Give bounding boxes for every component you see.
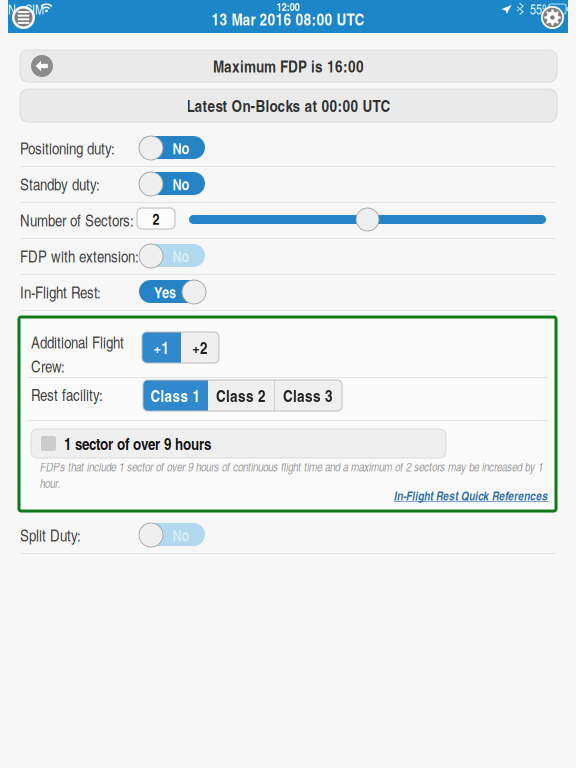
- staticText: Crew:: [31, 355, 65, 377]
- staticText: No: [172, 245, 189, 267]
- staticText: Class 1: [150, 384, 200, 407]
- staticText: Yes: [154, 281, 176, 303]
- staticText: 2: [152, 208, 159, 229]
- staticText: Split Duty:: [20, 524, 81, 546]
- staticText: Rest facility:: [31, 383, 103, 405]
- button[interactable]: Maximum FDP is 16:00: [20, 50, 557, 82]
- staticText: 55%: [530, 0, 552, 18]
- button[interactable]: In-Flight Rest Quick References: [387, 487, 548, 504]
- staticText: Latest On-Blocks at 00:00 UTC: [186, 94, 390, 117]
- staticText: In-Flight Rest:: [20, 281, 101, 303]
- staticText: FDPs that include 1 sector of over 9 hou…: [40, 458, 543, 491]
- button[interactable]: Class 2: [208, 380, 274, 411]
- staticText: 13 Mar 2016 08:00 UTC: [211, 7, 364, 31]
- staticText: Standby duty:: [20, 173, 100, 195]
- staticText: Additional Flight: [31, 331, 124, 353]
- button[interactable]: 1 sector of over 9 hours: [31, 429, 446, 458]
- button[interactable]: No: [139, 136, 205, 159]
- button[interactable]: Settings: [541, 6, 564, 29]
- button[interactable]: No: [139, 172, 205, 195]
- staticText: No SIM: [8, 0, 44, 18]
- staticText: No: [172, 137, 189, 159]
- button[interactable]: +1: [142, 332, 181, 363]
- button[interactable]: Latest On-Blocks at 00:00 UTC: [20, 89, 557, 122]
- button[interactable]: Yes: [139, 280, 205, 303]
- staticText: Number of Sectors:: [20, 209, 134, 231]
- staticText: No: [172, 173, 189, 195]
- button[interactable]: No: [139, 244, 205, 267]
- staticText: +2: [192, 336, 208, 359]
- staticText: Positioning duty:: [20, 137, 115, 159]
- button[interactable]: No: [139, 523, 205, 546]
- staticText: 1 sector of over 9 hours: [64, 432, 211, 455]
- staticText: FDP with extension:: [20, 245, 139, 267]
- button[interactable]: +2: [181, 332, 219, 363]
- button[interactable]: Class 1: [143, 380, 208, 411]
- staticText: Class 2: [216, 384, 266, 407]
- staticText: 12:00: [276, 0, 299, 14]
- button[interactable]: Class 3: [274, 380, 342, 411]
- staticText: In-Flight Rest Quick References: [394, 487, 548, 504]
- staticText: Class 3: [283, 384, 333, 407]
- staticText: No: [172, 524, 189, 546]
- staticText: Maximum FDP is 16:00: [213, 54, 364, 78]
- button[interactable]: Menu: [12, 6, 35, 29]
- staticText: +1: [153, 336, 169, 359]
